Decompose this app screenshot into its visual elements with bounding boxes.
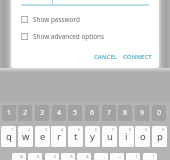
staticText: 6 bbox=[95, 127, 98, 132]
staticText: s bbox=[33, 157, 38, 160]
staticText: e bbox=[40, 130, 46, 143]
button[interactable]: 9 bbox=[135, 105, 149, 121]
staticText: 2 bbox=[23, 108, 28, 118]
staticText: u bbox=[107, 130, 113, 143]
staticText: i bbox=[125, 130, 128, 143]
button[interactable]: o bbox=[135, 126, 150, 147]
button[interactable]: i bbox=[119, 126, 134, 147]
staticText: CONNECT bbox=[123, 52, 152, 60]
staticText: CANCEL bbox=[94, 52, 118, 60]
button[interactable]: d bbox=[45, 153, 59, 160]
button[interactable]: 5 bbox=[68, 105, 82, 121]
staticText: 9 bbox=[145, 127, 148, 132]
staticText: 1 bbox=[7, 108, 12, 118]
button[interactable]: p bbox=[152, 126, 167, 147]
button[interactable]: y bbox=[85, 126, 100, 147]
staticText: 8 bbox=[123, 108, 128, 118]
button[interactable]: r bbox=[51, 126, 66, 147]
staticText: 5 bbox=[78, 127, 81, 132]
button[interactable]: s bbox=[28, 153, 42, 160]
button[interactable]: 1 bbox=[2, 105, 16, 121]
button[interactable]: Show password bbox=[14, 14, 144, 25]
staticText: - bbox=[104, 154, 106, 159]
button[interactable]: 4 bbox=[52, 105, 66, 121]
staticText: 3 bbox=[45, 127, 48, 132]
button[interactable]: g bbox=[77, 153, 91, 160]
staticText: 7 bbox=[107, 108, 112, 118]
staticText: 5 bbox=[73, 108, 78, 118]
button[interactable]: w bbox=[18, 126, 33, 147]
staticText: 4 bbox=[57, 108, 62, 118]
button[interactable]: e bbox=[35, 126, 50, 147]
staticText: 3 bbox=[40, 108, 45, 118]
staticText: 6 bbox=[90, 108, 95, 118]
staticText: @ bbox=[20, 154, 24, 159]
button[interactable]: k bbox=[126, 153, 140, 160]
staticText: 0 bbox=[162, 127, 165, 132]
staticText: w bbox=[22, 130, 30, 143]
button[interactable]: 2 bbox=[18, 105, 32, 121]
staticText: 8 bbox=[129, 127, 132, 132]
button[interactable]: CONNECT bbox=[121, 49, 154, 63]
staticText: q bbox=[6, 130, 12, 143]
button[interactable]: 7 bbox=[102, 105, 116, 121]
button[interactable]: Show advanced options bbox=[14, 31, 144, 42]
staticText: $ bbox=[54, 154, 57, 159]
button[interactable]: a bbox=[12, 153, 26, 160]
staticText: g bbox=[81, 157, 87, 160]
button[interactable]: q bbox=[1, 126, 16, 147]
staticText: & bbox=[86, 154, 89, 159]
button[interactable]: t bbox=[68, 126, 83, 147]
button[interactable]: f bbox=[61, 153, 75, 160]
button[interactable]: CANCEL bbox=[92, 49, 120, 63]
button[interactable]: 8 bbox=[118, 105, 132, 121]
button[interactable]: 0 bbox=[152, 105, 166, 121]
button[interactable]: j bbox=[110, 153, 124, 160]
staticText: t bbox=[74, 130, 78, 143]
staticText: Show password bbox=[33, 15, 80, 24]
staticText: 9 bbox=[140, 108, 145, 118]
staticText: ( bbox=[136, 154, 138, 159]
staticText: 0 bbox=[157, 108, 162, 118]
staticText: % bbox=[70, 154, 73, 159]
button[interactable]: 3 bbox=[35, 105, 49, 121]
button[interactable]: l bbox=[143, 153, 157, 160]
staticText: 2 bbox=[28, 127, 31, 132]
staticText: Show advanced options bbox=[33, 32, 105, 41]
staticText: + bbox=[119, 154, 122, 159]
staticText: 4 bbox=[61, 127, 64, 132]
staticText: y bbox=[90, 130, 95, 143]
staticText: o bbox=[140, 130, 146, 143]
staticText: 7 bbox=[112, 127, 115, 132]
button[interactable]: 6 bbox=[85, 105, 99, 121]
button[interactable]: u bbox=[102, 126, 117, 147]
staticText: d bbox=[49, 157, 55, 160]
button[interactable]: h bbox=[94, 153, 108, 160]
staticText: r bbox=[57, 130, 61, 143]
staticText: 1 bbox=[11, 127, 14, 132]
staticText: ) bbox=[153, 154, 155, 159]
staticText: # bbox=[37, 154, 40, 159]
staticText: a bbox=[16, 157, 22, 160]
staticText: p bbox=[157, 130, 163, 143]
